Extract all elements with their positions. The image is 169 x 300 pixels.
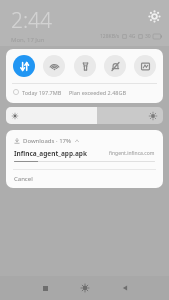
button[interactable]: Mobile data [13, 55, 35, 77]
staticText: Today 197.7MB [22, 89, 62, 96]
staticText: Infinca_agent_app.apk [14, 149, 87, 158]
button[interactable]: Home [73, 276, 97, 300]
button[interactable]: Silent [104, 55, 126, 77]
button[interactable]: Today 197.7MB [6, 84, 163, 100]
staticText: Cancel [14, 175, 33, 183]
staticText: 30 [145, 33, 151, 40]
button[interactable]: Cast [134, 55, 156, 77]
staticText: Plan exceeded 2.48GB [69, 89, 127, 96]
staticText: 4G [129, 33, 136, 40]
button[interactable]: Settings [147, 9, 161, 23]
button[interactable]: Flashlight [74, 55, 96, 77]
staticText: 2:44 [11, 6, 53, 35]
staticText: Downloads · 17% [23, 137, 72, 145]
button[interactable]: Downloads · 17% [6, 130, 163, 188]
button[interactable]: Back [113, 276, 137, 300]
button[interactable]: Brightness [6, 107, 163, 124]
button[interactable]: Wi-Fi [43, 55, 65, 77]
staticText: Mon, 17 Jun [11, 36, 45, 44]
staticText: 128KB/s [100, 33, 120, 40]
button[interactable]: Cancel [6, 170, 163, 188]
button[interactable]: Recents [33, 276, 57, 300]
staticText: fingent.infinca.com [109, 150, 155, 157]
